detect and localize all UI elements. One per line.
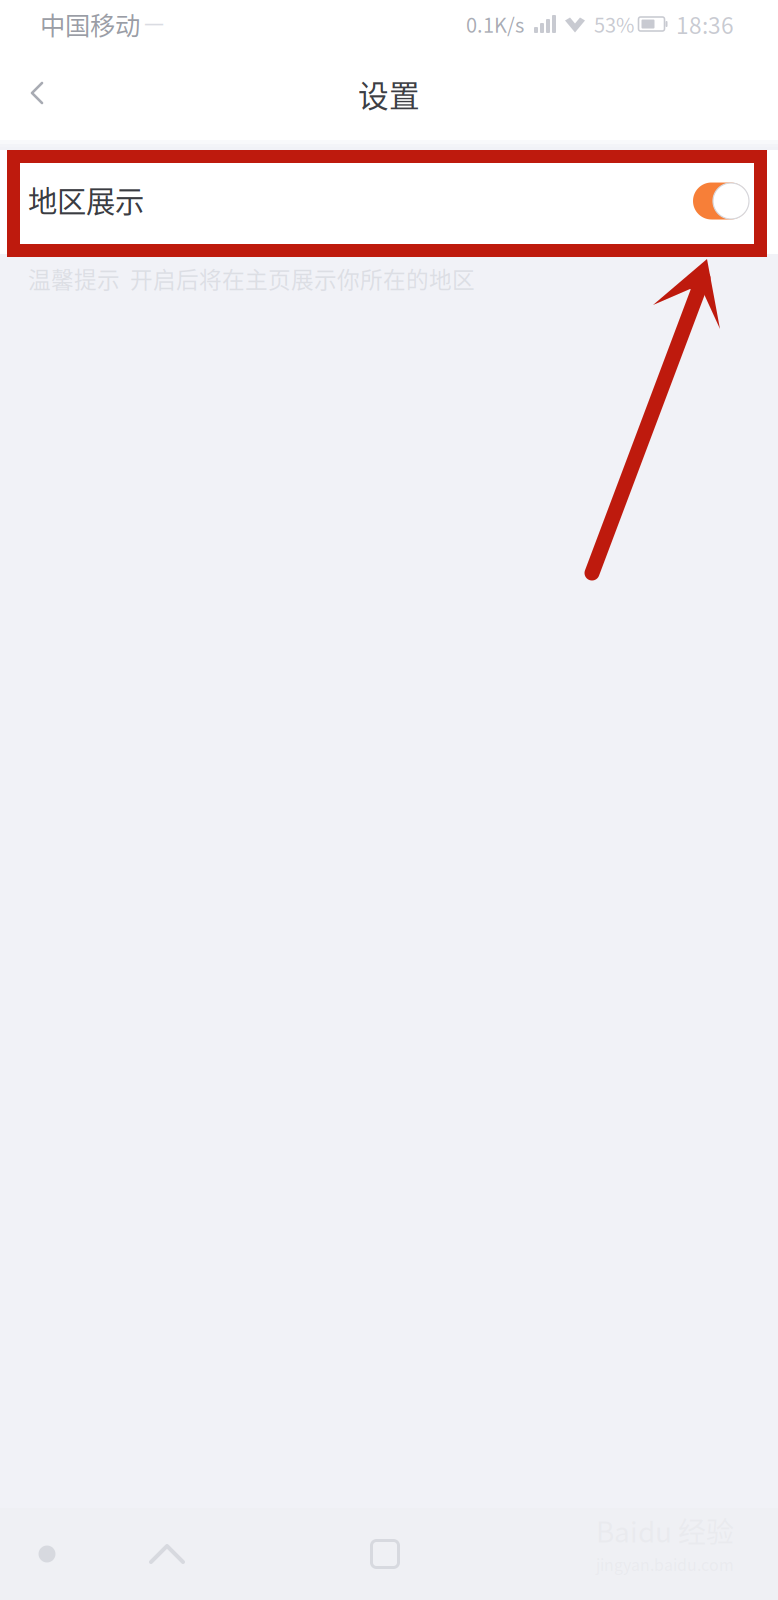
button[interactable]: Recents (338, 1508, 432, 1600)
staticText: 开启后将在主页展示你所在的地区 (120, 262, 475, 295)
staticText: 温馨提示 (28, 262, 120, 295)
button[interactable]: 地区展示 (0, 150, 778, 254)
button[interactable]: Home (120, 1508, 214, 1600)
staticText: 设置 (358, 72, 420, 116)
staticText: 53% (594, 9, 634, 38)
button[interactable]: Back (0, 1508, 94, 1600)
staticText: 0.1K/s (466, 9, 524, 38)
staticText: 18:36 (676, 8, 734, 40)
staticText: 一 (140, 9, 164, 38)
staticText: 地区展示 (28, 178, 144, 221)
staticText: 中国移动 (40, 6, 140, 42)
button[interactable]: 返回 (0, 48, 80, 140)
